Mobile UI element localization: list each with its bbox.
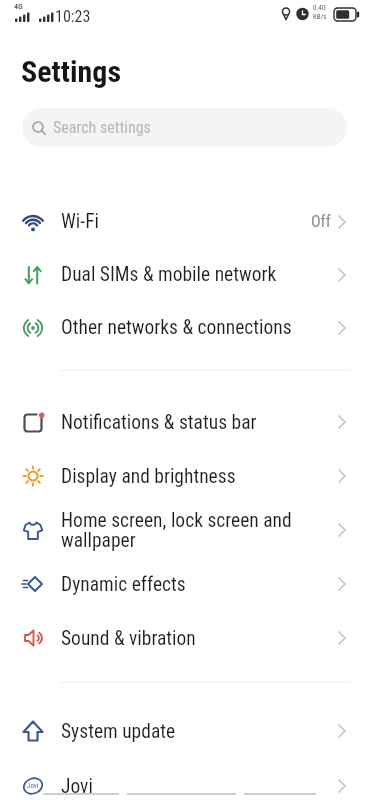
staticText: System update bbox=[61, 720, 176, 743]
button[interactable]: System update bbox=[0, 704, 369, 758]
staticText: Dual SIMs & mobile network bbox=[61, 263, 277, 286]
button[interactable]: Notifications & status bar bbox=[0, 395, 369, 449]
button[interactable]: Sound & vibration bbox=[0, 611, 369, 665]
staticText: Dynamic effects bbox=[61, 573, 186, 596]
button[interactable]: Home screen, lock screen and wallpaper bbox=[0, 503, 369, 557]
staticText: Off bbox=[311, 212, 331, 231]
staticText: Jovi bbox=[27, 782, 39, 790]
staticText: 10:23 bbox=[55, 7, 91, 26]
staticText: 0.4G KB/s bbox=[313, 4, 327, 20]
button[interactable]: Display and brightness bbox=[0, 449, 369, 503]
staticText: Sound & vibration bbox=[61, 627, 196, 650]
staticText: 4G bbox=[14, 2, 23, 11]
staticText: Notifications & status bar bbox=[61, 411, 257, 434]
staticText: Other networks & connections bbox=[61, 316, 292, 339]
button[interactable]: Dynamic effects bbox=[0, 557, 369, 611]
staticText: Display and brightness bbox=[61, 465, 236, 488]
staticText: Wi-Fi bbox=[61, 210, 100, 233]
staticText: Search settings bbox=[53, 118, 151, 137]
staticText: Settings bbox=[21, 54, 122, 89]
button[interactable]: Search settings bbox=[22, 108, 347, 147]
staticText: Jovi bbox=[61, 775, 93, 798]
button[interactable]: Jovi bbox=[0, 759, 369, 800]
button[interactable]: Other networks & connections bbox=[0, 301, 369, 354]
staticText: Home screen, lock screen and wallpaper bbox=[61, 509, 292, 552]
button[interactable]: Dual SIMs & mobile network bbox=[0, 248, 369, 301]
button[interactable]: Wi-Fi bbox=[0, 195, 369, 248]
